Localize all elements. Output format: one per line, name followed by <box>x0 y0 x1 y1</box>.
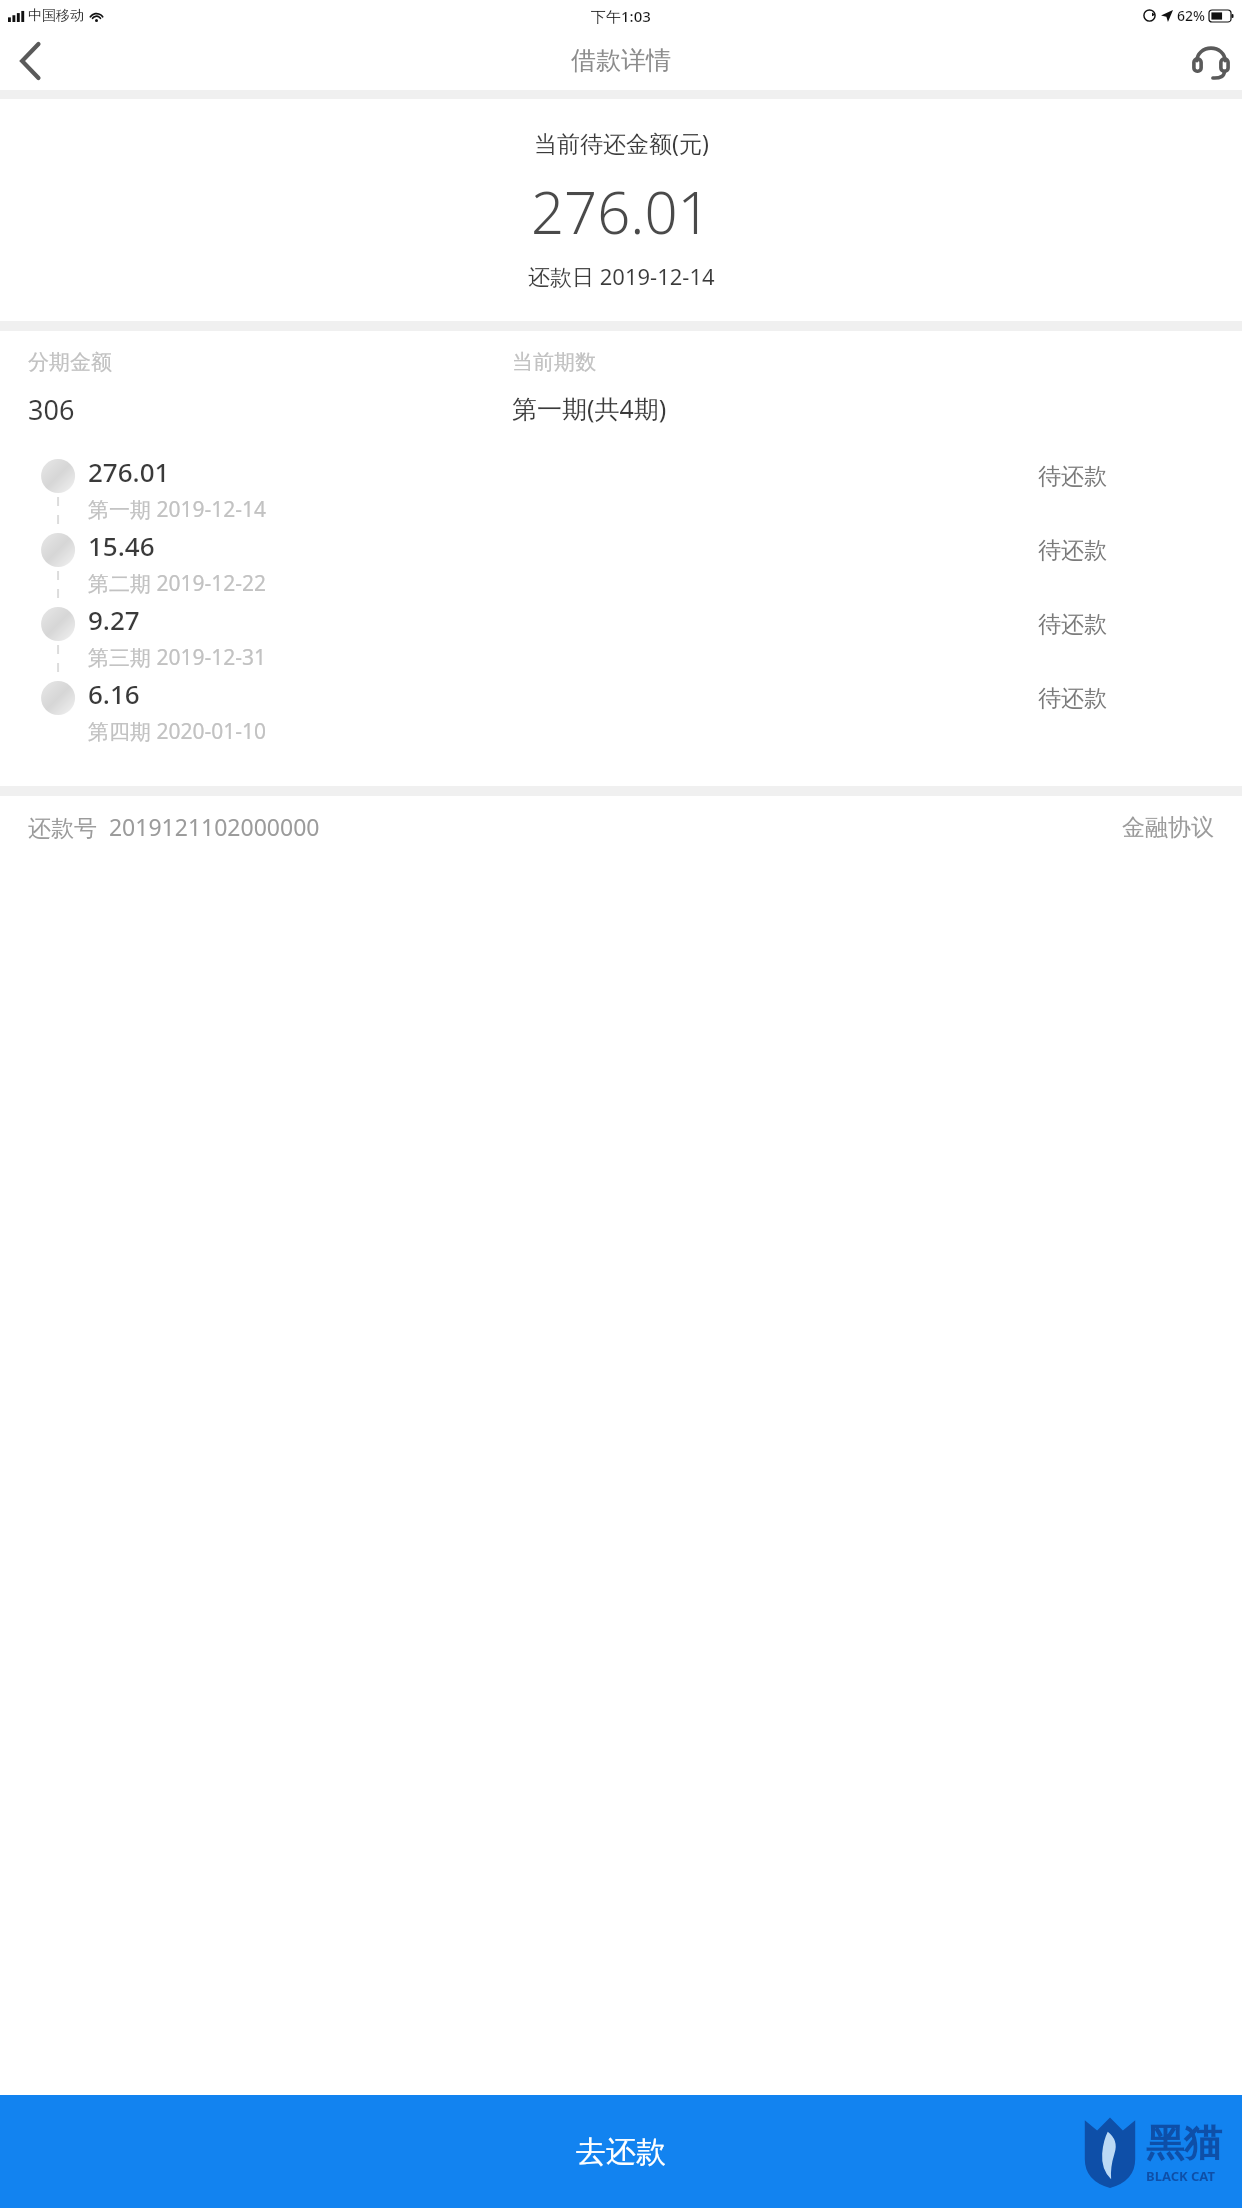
staticText: 待还款 <box>1038 684 1107 713</box>
button[interactable]: 去还款 <box>0 2095 1242 2208</box>
staticText: 借款详情 <box>571 45 671 76</box>
staticText: 第四期 2020-01-10 <box>88 717 267 746</box>
staticText: 中国移动 <box>28 7 84 25</box>
staticText: 当前期数 <box>512 349 596 375</box>
staticText: 62% <box>1177 6 1205 25</box>
staticText: 9.27 <box>88 602 140 637</box>
staticText: 306 <box>28 391 75 428</box>
staticText: BLACK CAT <box>1146 2167 1215 2185</box>
staticText: 金融协议 <box>1122 813 1214 842</box>
staticText: 276.01 <box>88 454 170 489</box>
staticText: 276.01 <box>531 172 711 251</box>
staticText: 待还款 <box>1038 536 1107 565</box>
staticText: 第一期(共4期) <box>512 391 667 425</box>
staticText: 黑猫 <box>1146 2119 1222 2167</box>
button[interactable]: Customer service <box>1180 31 1242 90</box>
staticText: 待还款 <box>1038 462 1107 491</box>
staticText: 还款日 2019-12-14 <box>528 261 715 291</box>
staticText: 15.46 <box>88 528 155 563</box>
button[interactable]: 276.01 <box>0 454 1242 528</box>
staticText: 分期金额 <box>28 349 112 375</box>
staticText: 还款号 2019121102000000 <box>28 811 320 842</box>
staticText: 待还款 <box>1038 610 1107 639</box>
staticText: 第一期 2019-12-14 <box>88 495 267 524</box>
staticText: 下午1:03 <box>591 6 651 26</box>
staticText: 第三期 2019-12-31 <box>88 643 267 672</box>
button[interactable]: 9.27 <box>0 602 1242 676</box>
button[interactable]: Back <box>0 31 60 90</box>
staticText: 去还款 <box>576 2133 666 2171</box>
button[interactable]: 15.46 <box>0 528 1242 602</box>
staticText: 当前待还金额(元) <box>534 127 709 158</box>
button[interactable]: 6.16 <box>0 676 1242 750</box>
staticText: 6.16 <box>88 676 140 711</box>
staticText: 第二期 2019-12-22 <box>88 569 267 598</box>
